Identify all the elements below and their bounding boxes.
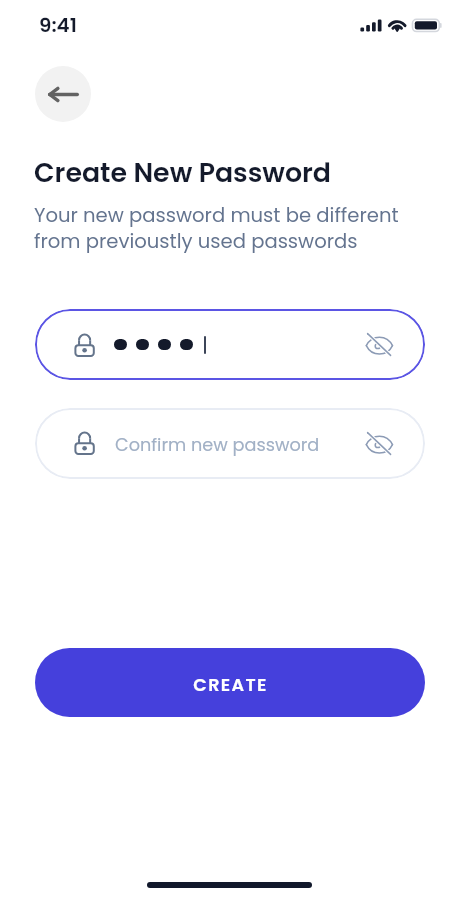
staticText: CREATE xyxy=(193,673,268,698)
staticText: 9:41 xyxy=(39,11,77,39)
button[interactable]: Show confirm password xyxy=(365,428,396,455)
staticText: Confirm new password xyxy=(115,432,320,457)
button[interactable]: Show password xyxy=(365,329,396,356)
staticText: Create New Password xyxy=(34,154,332,192)
staticText: Your new password must be different from… xyxy=(34,201,399,255)
button[interactable]: Show password xyxy=(35,309,425,380)
button[interactable]: Back xyxy=(35,66,91,122)
button[interactable]: CREATE xyxy=(35,648,425,717)
button[interactable]: Confirm new password xyxy=(35,408,425,479)
